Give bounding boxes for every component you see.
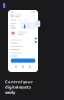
staticText: Control your [5,79,33,84]
staticText: easily [5,90,15,95]
staticText: digital assets [5,84,31,90]
